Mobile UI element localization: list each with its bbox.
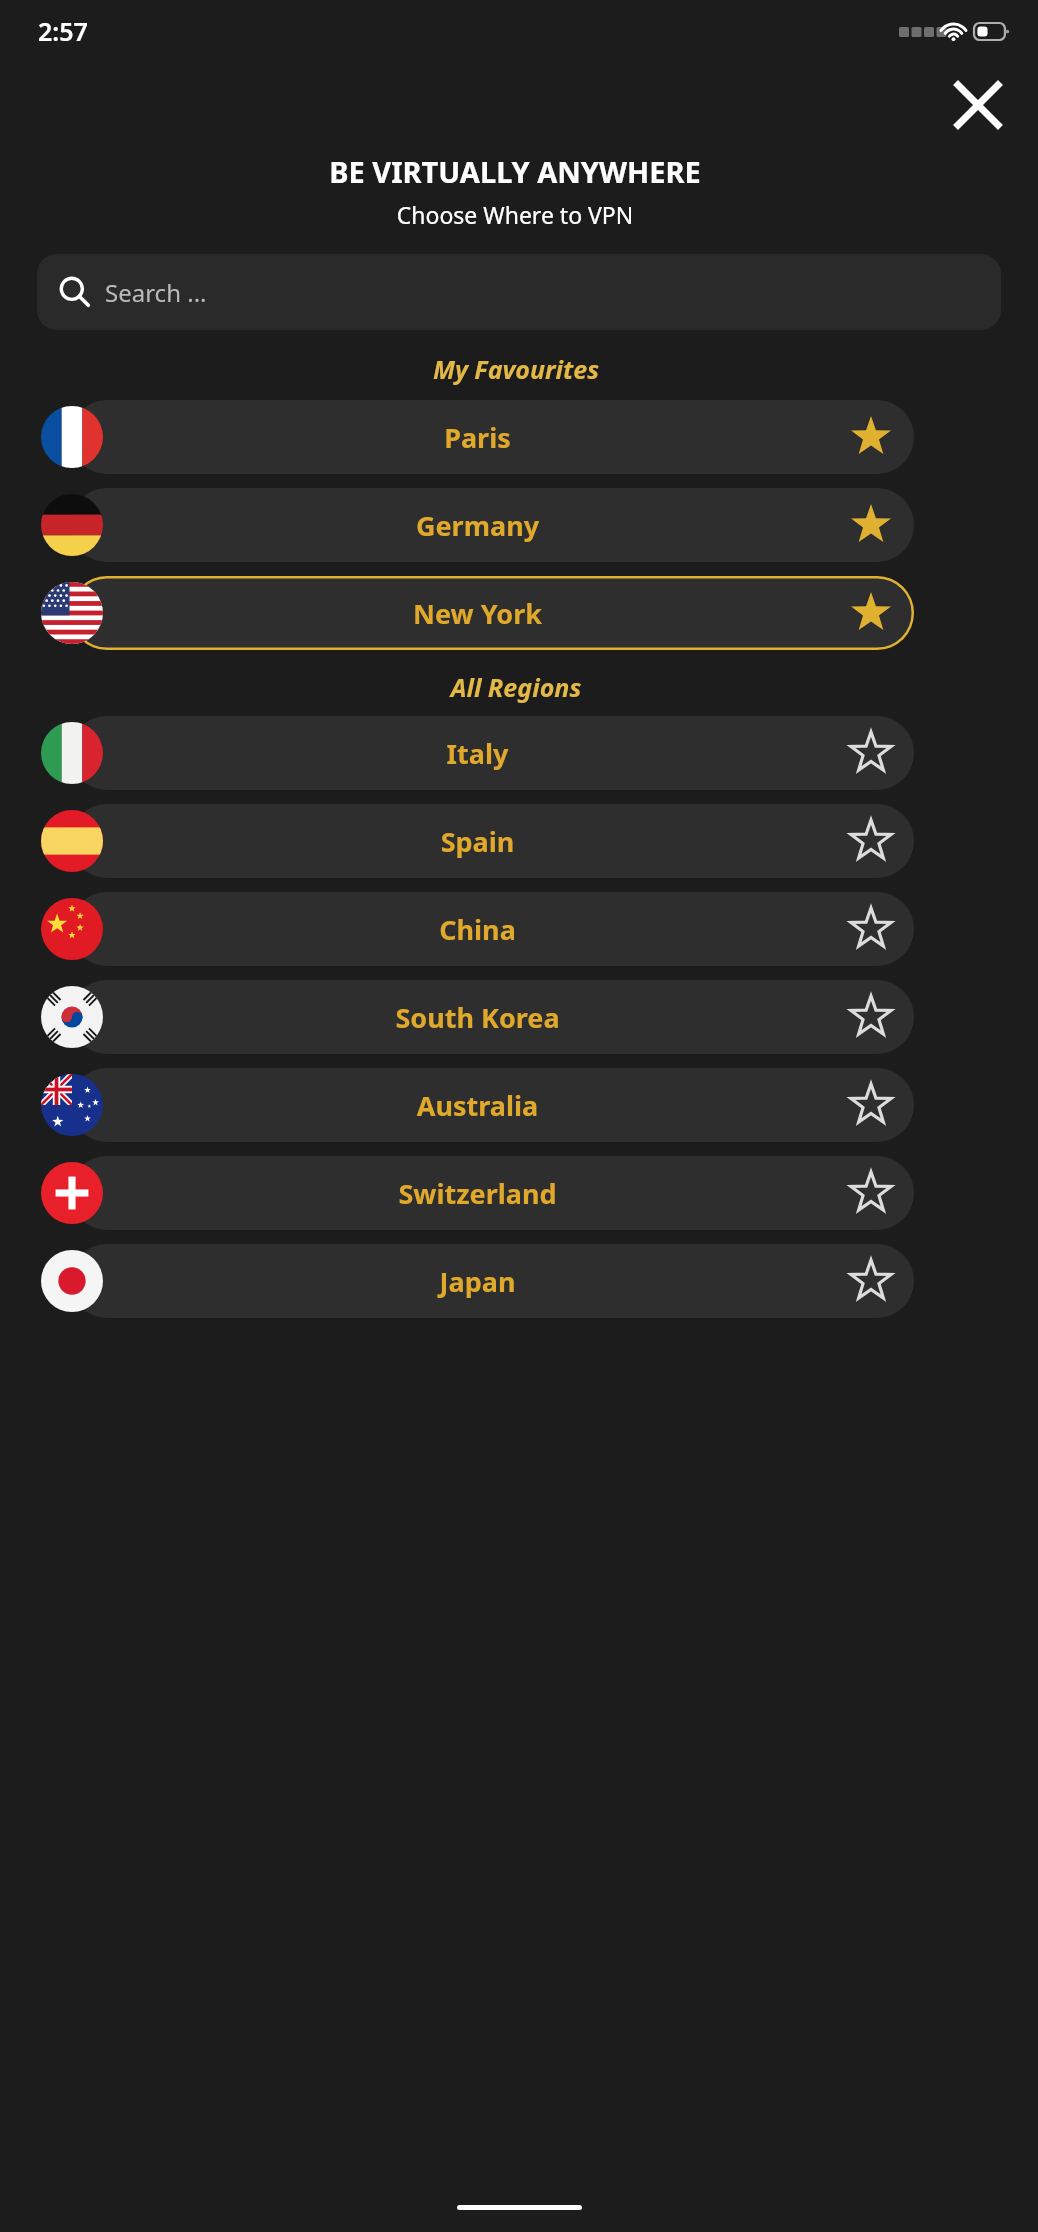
button[interactable]: Remove favourite (846, 412, 896, 462)
button[interactable]: Switzerland (41, 1156, 914, 1230)
staticText: Choose Where to VPN (0, 199, 1030, 230)
staticText: New York (41, 595, 914, 632)
staticText: China (41, 911, 914, 948)
button[interactable]: Remove favourite (846, 500, 896, 550)
button[interactable]: Add favourite (846, 992, 896, 1042)
button[interactable]: Add favourite (846, 904, 896, 954)
staticText: Italy (41, 735, 914, 772)
staticText: Japan (41, 1263, 914, 1300)
button[interactable]: China (41, 892, 914, 966)
button[interactable]: Add favourite (846, 1168, 896, 1218)
button[interactable]: Japan (41, 1244, 914, 1318)
staticText: South Korea (41, 999, 914, 1036)
button[interactable]: Add favourite (846, 1256, 896, 1306)
button[interactable]: South Korea (41, 980, 914, 1054)
staticText: Australia (41, 1087, 914, 1124)
button[interactable]: Add favourite (846, 1080, 896, 1130)
button[interactable]: Remove favourite (846, 588, 896, 638)
button[interactable]: Spain (41, 804, 914, 878)
button[interactable]: New York (41, 576, 914, 650)
staticText: All Regions (0, 670, 1032, 704)
staticText: 2:57 (38, 14, 88, 48)
button[interactable]: Paris (41, 400, 914, 474)
button[interactable]: Search ... (37, 254, 1001, 330)
staticText: Paris (41, 419, 914, 456)
staticText: BE VIRTUALLY ANYWHERE (0, 152, 1030, 191)
button[interactable]: Close (946, 73, 1010, 137)
staticText: Search ... (105, 276, 207, 309)
staticText: My Favourites (0, 352, 1032, 386)
button[interactable]: Italy (41, 716, 914, 790)
staticText: Germany (41, 507, 914, 544)
button[interactable]: Add favourite (846, 728, 896, 778)
button[interactable]: Add favourite (846, 816, 896, 866)
staticText: Spain (41, 823, 914, 860)
button[interactable]: Germany (41, 488, 914, 562)
staticText: Switzerland (41, 1175, 914, 1212)
button[interactable]: Australia (41, 1068, 914, 1142)
